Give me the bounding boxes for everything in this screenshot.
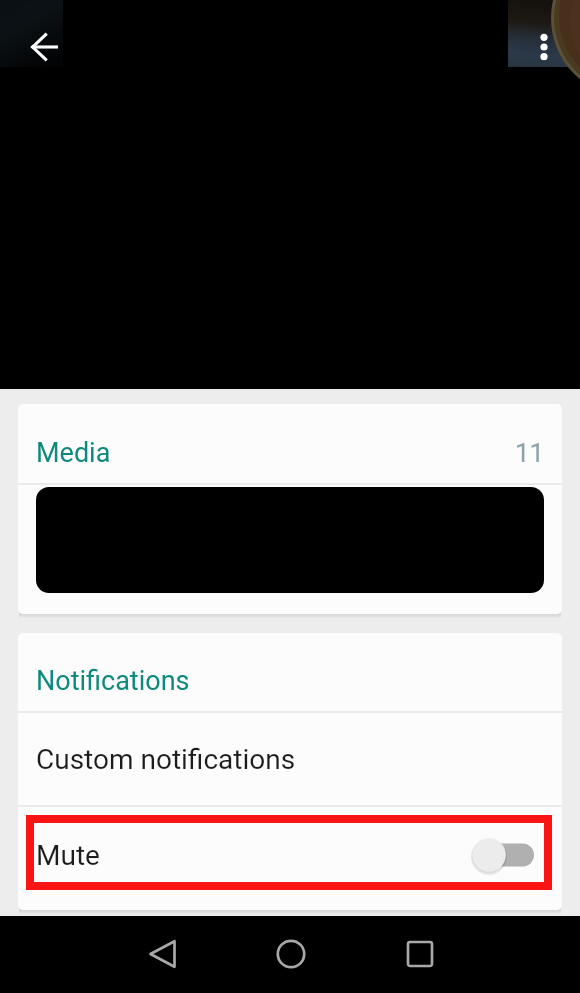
staticText: 11 — [515, 438, 545, 468]
button[interactable]: Mute — [18, 807, 562, 903]
button[interactable]: Home — [264, 927, 318, 981]
button[interactable]: Media — [18, 404, 562, 483]
button[interactable]: Custom notifications — [18, 713, 562, 805]
button[interactable]: Back — [20, 23, 68, 71]
button[interactable]: Back — [135, 927, 189, 981]
button[interactable]: More options — [520, 23, 568, 71]
staticText: Custom notifications — [36, 743, 296, 776]
button[interactable]: Media thumbnail — [36, 487, 544, 593]
staticText: Notifications — [36, 665, 190, 697]
staticText: Mute — [36, 839, 100, 872]
staticText: Media — [36, 437, 111, 469]
button[interactable]: Recent apps — [393, 927, 447, 981]
